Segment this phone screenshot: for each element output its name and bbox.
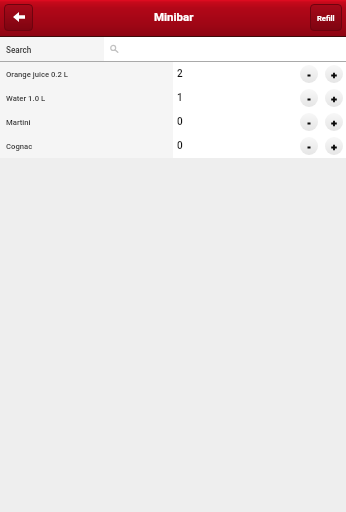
button[interactable]: Refill [310, 4, 342, 31]
staticText: 0 [177, 116, 183, 128]
button[interactable]: Decrease quantity [300, 89, 318, 107]
button[interactable]: Increase quantity [325, 65, 343, 83]
button[interactable]: Cognac [0, 134, 173, 158]
staticText: 0 [177, 140, 183, 152]
button[interactable]: Increase quantity [325, 89, 343, 107]
button[interactable]: Martini [0, 110, 173, 134]
staticText: Water 1.0 L [6, 94, 46, 103]
button[interactable]: Water 1.0 L [0, 86, 173, 110]
staticText: Martini [6, 118, 31, 127]
button[interactable]: Decrease quantity [300, 113, 318, 131]
staticText: Search [6, 45, 32, 55]
staticText: Orange juice 0.2 L [6, 70, 68, 79]
button[interactable]: Search [0, 37, 346, 61]
staticText: 1 [177, 92, 183, 104]
button[interactable]: Increase quantity [325, 137, 343, 155]
staticText: Cognac [6, 142, 33, 151]
button[interactable]: Increase quantity [325, 113, 343, 131]
staticText: Refill [317, 14, 335, 23]
staticText: Minibar [154, 10, 194, 23]
button[interactable]: Decrease quantity [300, 137, 318, 155]
button[interactable]: Decrease quantity [300, 65, 318, 83]
staticText: 2 [177, 68, 183, 80]
button[interactable]: Back [4, 4, 33, 31]
button[interactable]: Orange juice 0.2 L [0, 62, 173, 86]
